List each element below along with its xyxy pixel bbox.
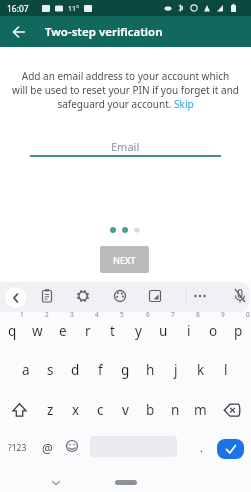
button[interactable]: s [38, 351, 63, 389]
button[interactable]: e [50, 312, 75, 350]
button[interactable]: q [0, 312, 25, 350]
staticText: p [234, 322, 243, 340]
staticText: 3 [70, 310, 74, 319]
staticText: 7 [171, 310, 175, 319]
staticText: r [85, 322, 91, 340]
staticText: e [59, 322, 67, 340]
button[interactable]: t [100, 312, 125, 350]
staticText: 16:07 [7, 3, 29, 15]
staticText: ?123 [8, 442, 27, 454]
button[interactable]: . [194, 429, 210, 467]
staticText: q [8, 322, 17, 340]
staticText: 6 [146, 310, 150, 319]
staticText: 4 [95, 310, 99, 319]
button[interactable]: i [176, 312, 201, 350]
staticText: g [121, 361, 130, 379]
button[interactable]: x [63, 391, 88, 429]
button[interactable] [5, 287, 26, 308]
staticText: Email [111, 139, 140, 154]
button[interactable]: m [188, 391, 213, 429]
button[interactable]: n [163, 391, 188, 429]
staticText: Two-step verification [45, 24, 163, 40]
staticText: l [224, 361, 228, 379]
staticText: 9 [221, 310, 225, 319]
button[interactable] [217, 439, 244, 459]
staticText: 2 [45, 310, 49, 319]
staticText: 5 [120, 310, 124, 319]
button[interactable]: ?123 [3, 429, 31, 467]
button[interactable]: g [113, 351, 138, 389]
staticText: 0 [246, 310, 250, 319]
staticText: NEXT [113, 254, 136, 266]
staticText: b [146, 401, 155, 419]
button[interactable]: z [38, 391, 63, 429]
button[interactable]: d [63, 351, 88, 389]
button[interactable] [115, 480, 137, 485]
button[interactable]: y [126, 312, 151, 350]
button[interactable]: Add an email address to your account whi… [0, 69, 251, 111]
staticText: 11° [68, 4, 80, 14]
staticText: a [22, 361, 30, 379]
staticText: y [135, 322, 142, 340]
staticText: m [194, 401, 207, 419]
staticText: h [146, 361, 155, 379]
staticText: 1 [20, 310, 24, 319]
staticText: t [110, 322, 115, 340]
button[interactable]: l [213, 351, 238, 389]
button[interactable]: f [88, 351, 113, 389]
staticText: w [32, 322, 43, 340]
button[interactable]: r [75, 312, 100, 350]
staticText: k [197, 361, 205, 379]
button[interactable] [6, 19, 31, 44]
button[interactable]: j [163, 351, 188, 389]
staticText: u [159, 322, 168, 340]
staticText: n [171, 401, 180, 419]
button[interactable]: c [88, 391, 113, 429]
button[interactable]: p [226, 312, 251, 350]
button[interactable]: v [113, 391, 138, 429]
staticText: x [72, 401, 80, 419]
staticText: v [122, 401, 129, 419]
staticText: 8 [196, 310, 200, 319]
button[interactable]: @ [36, 429, 58, 467]
staticText: s [47, 361, 54, 379]
button[interactable]: w [25, 312, 50, 350]
staticText: z [47, 401, 54, 419]
staticText: . [200, 440, 204, 456]
staticText: @ [42, 440, 53, 456]
button[interactable]: NEXT [100, 246, 149, 273]
staticText: f [98, 361, 103, 379]
staticText: o [209, 322, 218, 340]
button[interactable]: a [13, 351, 38, 389]
staticText: i [187, 322, 191, 340]
button[interactable]: h [138, 351, 163, 389]
button[interactable]: o [201, 312, 226, 350]
staticText: d [71, 361, 80, 379]
button[interactable]: b [138, 391, 163, 429]
staticText: j [174, 361, 178, 379]
button[interactable]: u [151, 312, 176, 350]
staticText: c [97, 401, 104, 419]
button[interactable]: k [188, 351, 213, 389]
